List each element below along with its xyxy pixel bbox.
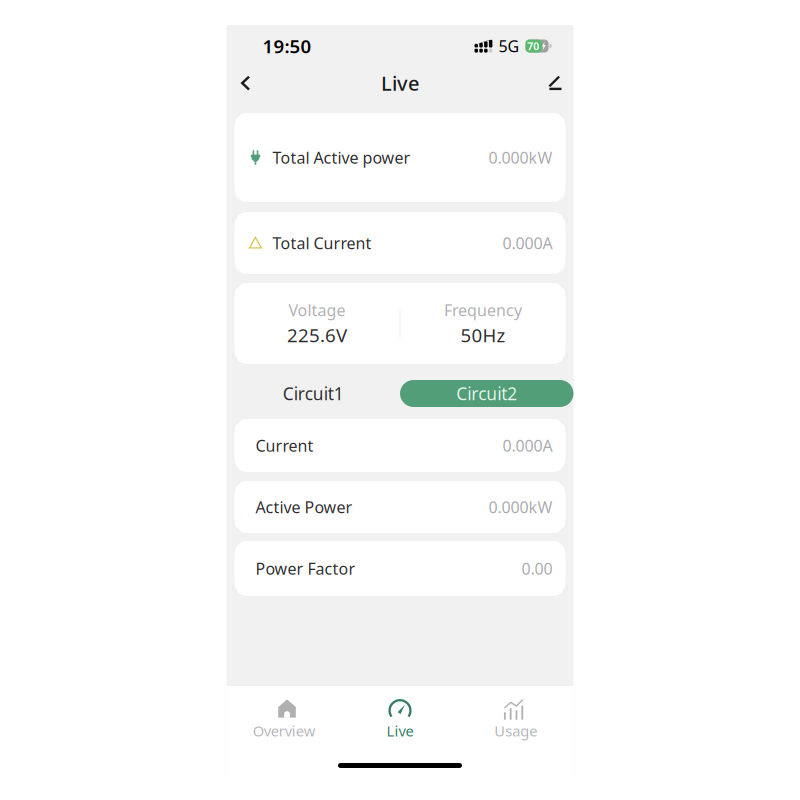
button[interactable]: Live xyxy=(342,686,458,745)
staticText: 50Hz xyxy=(460,323,505,347)
staticText: Voltage xyxy=(288,299,345,321)
staticText: Circuit1 xyxy=(283,382,344,405)
button[interactable]: Power Factor xyxy=(234,541,565,596)
staticText: Power Factor xyxy=(255,558,355,579)
button[interactable]: Circuit2 xyxy=(400,380,573,407)
staticText: Circuit2 xyxy=(456,382,517,405)
button[interactable]: Circuit1 xyxy=(226,380,400,407)
button[interactable]: Edit xyxy=(538,67,572,99)
staticText: Live xyxy=(381,70,419,96)
staticText: Active Power xyxy=(255,496,352,518)
staticText: 0.000A xyxy=(502,232,552,254)
staticText: Overview xyxy=(253,721,316,740)
staticText: 0.000kW xyxy=(488,496,552,518)
button[interactable]: Current xyxy=(234,419,565,472)
staticText: Live xyxy=(386,721,413,740)
staticText: Total Active power xyxy=(272,147,410,168)
staticText: 5G xyxy=(498,35,519,57)
staticText: 0.000kW xyxy=(488,147,552,168)
staticText: Usage xyxy=(494,721,537,740)
staticText: Total Current xyxy=(272,232,371,254)
staticText: 70 xyxy=(527,39,539,53)
staticText: Frequency xyxy=(444,299,522,321)
button[interactable]: Total Current xyxy=(234,212,565,274)
staticText: 19:50 xyxy=(262,34,311,58)
button[interactable]: Overview xyxy=(226,686,342,745)
button[interactable]: Total Active power xyxy=(234,113,565,202)
button[interactable]: Usage xyxy=(458,686,573,745)
button[interactable]: Back xyxy=(228,67,262,99)
staticText: 0.000A xyxy=(502,435,552,456)
staticText: 0.00 xyxy=(521,558,552,579)
button[interactable]: Active Power xyxy=(234,481,565,533)
staticText: 225.6V xyxy=(287,323,347,347)
staticText: Current xyxy=(255,435,313,456)
